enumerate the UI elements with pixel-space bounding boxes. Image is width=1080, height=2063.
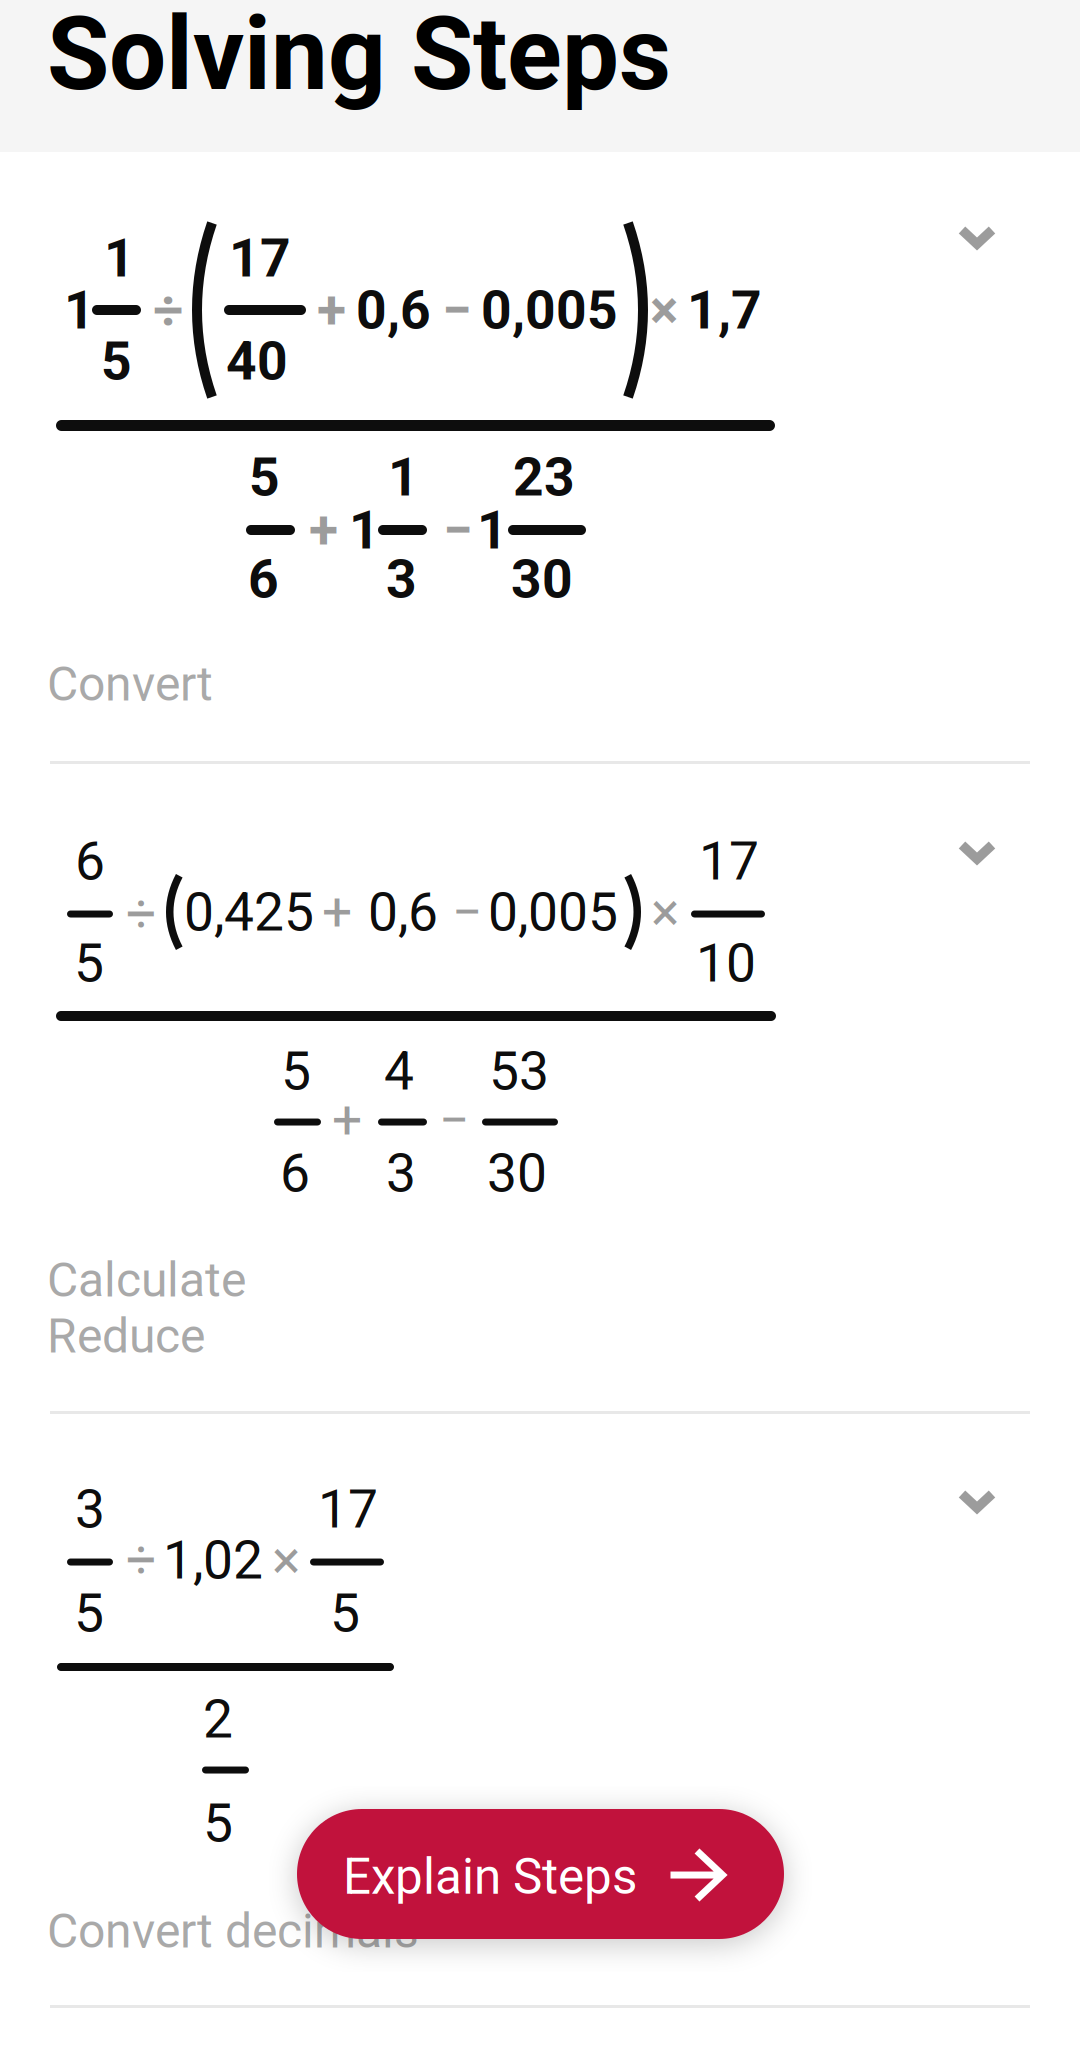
staticText: 3 <box>386 1142 416 1204</box>
staticText: 5 <box>74 932 104 994</box>
staticText: + <box>322 881 352 943</box>
staticText: 0,005 <box>488 881 618 943</box>
button[interactable]: Explain Steps <box>297 1809 784 1939</box>
staticText: 1 <box>104 227 135 289</box>
staticText: 4 <box>384 1040 414 1102</box>
staticText: Calculate <box>47 1252 246 1308</box>
button[interactable]: Collapse step <box>957 1489 997 1514</box>
staticText: 3 <box>75 1478 105 1540</box>
staticText: 30 <box>487 1142 547 1204</box>
staticText: × <box>651 881 679 943</box>
staticText: − <box>439 1089 469 1151</box>
staticText: 1,7 <box>687 279 762 341</box>
staticText: ÷ <box>126 883 156 945</box>
staticText: 1 <box>349 499 380 561</box>
staticText: Convert decimals <box>47 1903 419 1959</box>
staticText: × <box>272 1529 300 1591</box>
staticText: 17 <box>318 1478 378 1540</box>
staticText: 17 <box>699 830 759 892</box>
staticText: Solving Steps <box>47 0 671 114</box>
staticText: 23 <box>513 446 575 508</box>
button[interactable]: Collapse step <box>957 840 997 865</box>
staticText: Explain Steps <box>343 1848 637 1906</box>
staticText: 5 <box>281 1040 311 1102</box>
staticText: 1 <box>477 499 508 561</box>
staticText: + <box>309 499 338 561</box>
staticText: 3 <box>386 548 417 610</box>
staticText: 0,005 <box>481 279 618 341</box>
staticText: 0,6 <box>368 881 438 943</box>
staticText: − <box>442 279 472 341</box>
staticText: 1 <box>64 279 95 341</box>
staticText: ÷ <box>126 1529 156 1591</box>
staticText: 5 <box>74 1582 104 1644</box>
button[interactable]: Collapse step <box>957 225 997 250</box>
staticText: 5 <box>203 1792 233 1854</box>
staticText: × <box>650 279 678 341</box>
staticText: + <box>317 279 346 341</box>
staticText: ÷ <box>153 279 183 341</box>
staticText: 10 <box>696 932 756 994</box>
staticText: + <box>332 1089 362 1151</box>
staticText: 5 <box>101 330 132 392</box>
staticText: 6 <box>280 1142 310 1204</box>
staticText: 5 <box>330 1582 360 1644</box>
staticText: 6 <box>248 548 279 610</box>
staticText: 30 <box>511 548 573 610</box>
staticText: 0,6 <box>356 279 431 341</box>
staticText: 0,425 <box>184 881 314 943</box>
staticText: 2 <box>203 1688 233 1750</box>
staticText: 17 <box>229 227 291 289</box>
staticText: 6 <box>75 830 105 892</box>
staticText: − <box>452 881 482 943</box>
staticText: 53 <box>489 1040 549 1102</box>
staticText: 5 <box>249 446 280 508</box>
staticText: Convert <box>47 656 213 712</box>
staticText: 40 <box>226 330 288 392</box>
staticText: Reduce <box>47 1308 205 1364</box>
staticText: 1 <box>388 446 419 508</box>
staticText: 1,02 <box>163 1529 263 1591</box>
staticText: − <box>443 499 473 561</box>
